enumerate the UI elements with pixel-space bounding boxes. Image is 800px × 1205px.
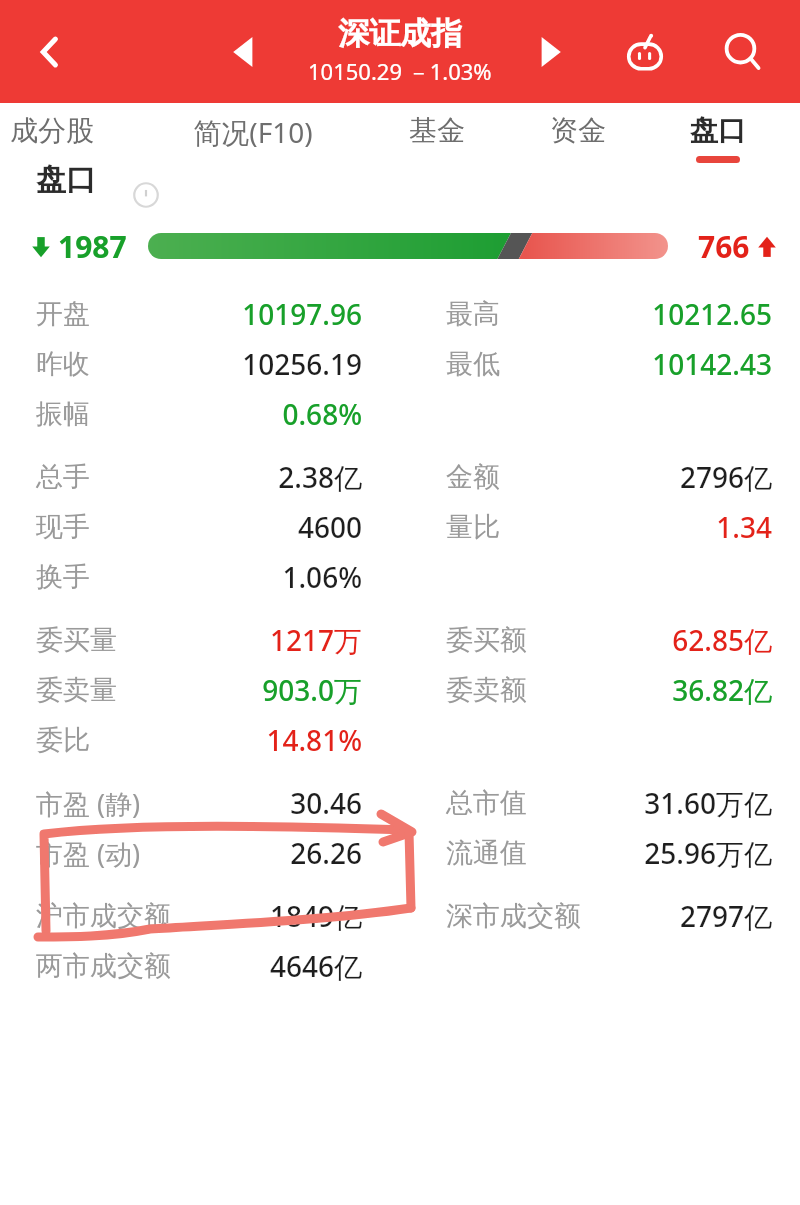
button[interactable]: 两市成交额 bbox=[0, 941, 800, 991]
staticText: 36.82亿 bbox=[672, 671, 772, 709]
button[interactable]: 市盈 (动) bbox=[0, 828, 800, 878]
staticText: 委卖量 bbox=[36, 673, 117, 707]
staticText: 最高 bbox=[446, 297, 500, 331]
button[interactable]: Assistant bbox=[610, 17, 680, 87]
button[interactable]: 盘口 bbox=[646, 103, 790, 185]
staticText: 0.68% bbox=[282, 395, 362, 433]
button[interactable]: Search bbox=[708, 17, 778, 87]
button[interactable]: Next bbox=[518, 20, 582, 84]
button[interactable]: 资金 bbox=[506, 103, 650, 185]
staticText: 委买量 bbox=[36, 623, 117, 657]
staticText: 903.0万 bbox=[262, 671, 362, 709]
staticText: 1.06% bbox=[282, 558, 362, 596]
staticText: 昨收 bbox=[36, 347, 90, 381]
staticText: 金额 bbox=[446, 460, 500, 494]
staticText: 基金 bbox=[409, 113, 465, 148]
button[interactable]: 盘口 bbox=[0, 185, 800, 217]
staticText: 10142.43 bbox=[652, 345, 772, 383]
staticText: 10197.96 bbox=[242, 295, 362, 333]
staticText: 4646亿 bbox=[269, 947, 362, 985]
staticText: 量比 bbox=[446, 510, 500, 544]
staticText: 25.96万亿 bbox=[644, 834, 772, 872]
button[interactable]: 基金 bbox=[365, 103, 509, 185]
button[interactable]: 成分股 bbox=[0, 103, 124, 185]
staticText: 2796亿 bbox=[679, 458, 772, 496]
button[interactable]: 委比 bbox=[0, 715, 800, 765]
staticText: 开盘 bbox=[36, 297, 90, 331]
staticText: 总手 bbox=[36, 460, 90, 494]
button[interactable]: 开盘 bbox=[0, 289, 800, 339]
staticText: 10256.19 bbox=[242, 345, 362, 383]
staticText: 10212.65 bbox=[652, 295, 772, 333]
button[interactable]: 766 bbox=[698, 226, 778, 267]
button[interactable]: 1987 bbox=[30, 226, 127, 267]
staticText: 盘口 bbox=[36, 161, 96, 193]
staticText: 4600 bbox=[297, 508, 362, 546]
staticText: 30.46 bbox=[290, 784, 362, 822]
staticText: 两市成交额 bbox=[36, 949, 171, 983]
staticText: 深市成交额 bbox=[446, 899, 581, 933]
button[interactable]: 昨收 bbox=[0, 339, 800, 389]
staticText: 1849亿 bbox=[269, 897, 362, 935]
staticText: 2.38亿 bbox=[278, 458, 362, 496]
staticText: 14.81% bbox=[266, 721, 362, 759]
staticText: 振幅 bbox=[36, 397, 90, 431]
button[interactable]: 简况(F10) bbox=[181, 103, 325, 185]
staticText: 现手 bbox=[36, 510, 90, 544]
staticText: 成分股 bbox=[10, 113, 94, 148]
staticText: 1987 bbox=[58, 226, 127, 267]
staticText: 31.60万亿 bbox=[644, 784, 772, 822]
button[interactable]: Previous bbox=[212, 20, 276, 84]
button[interactable]: 现手 bbox=[0, 502, 800, 552]
staticText: 换手 bbox=[36, 560, 90, 594]
staticText: 1217万 bbox=[269, 621, 362, 659]
staticText: 委买额 bbox=[446, 623, 527, 657]
staticText: 1.34 bbox=[716, 508, 772, 546]
staticText: 市盈 (静) bbox=[36, 785, 141, 822]
button[interactable]: 市盈 (静) bbox=[0, 778, 800, 828]
staticText: 简况(F10) bbox=[193, 113, 313, 151]
staticText: 深证成指 bbox=[338, 14, 462, 53]
staticText: 最低 bbox=[446, 347, 500, 381]
staticText: 总市值 bbox=[446, 786, 527, 820]
button[interactable]: 委卖量 bbox=[0, 665, 800, 715]
staticText: 资金 bbox=[550, 113, 606, 148]
staticText: 流通值 bbox=[446, 836, 527, 870]
button[interactable]: 深证成指 bbox=[308, 14, 492, 86]
staticText: 沪市成交额 bbox=[36, 899, 171, 933]
staticText: 10150.29 －1.03% bbox=[308, 56, 492, 86]
staticText: 委比 bbox=[36, 723, 90, 757]
button[interactable]: 振幅 bbox=[0, 389, 800, 439]
staticText: 市盈 (动) bbox=[36, 835, 141, 872]
button[interactable]: 换手 bbox=[0, 552, 800, 602]
button[interactable]: Back bbox=[14, 16, 86, 88]
staticText: 盘口 bbox=[690, 113, 746, 148]
button[interactable]: 沪市成交额 bbox=[0, 891, 800, 941]
staticText: 26.26 bbox=[290, 834, 362, 872]
staticText: 委卖额 bbox=[446, 673, 527, 707]
staticText: 2797亿 bbox=[679, 897, 772, 935]
staticText: 766 bbox=[698, 226, 750, 267]
button[interactable]: 委买量 bbox=[0, 615, 800, 665]
staticText: 62.85亿 bbox=[672, 621, 772, 659]
button[interactable]: 总手 bbox=[0, 452, 800, 502]
